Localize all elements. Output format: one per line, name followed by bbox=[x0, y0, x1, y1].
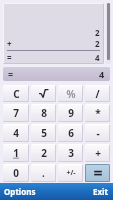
staticText: 1 bbox=[13, 146, 19, 160]
button[interactable]: Percent bbox=[58, 85, 83, 102]
button[interactable]: 2 bbox=[3, 3, 104, 64]
staticText: 5 bbox=[41, 126, 47, 140]
staticText: = bbox=[8, 68, 14, 80]
button[interactable]: Add bbox=[85, 144, 110, 162]
button[interactable]: 1 bbox=[3, 144, 29, 162]
staticText: 2 bbox=[95, 38, 100, 49]
staticText: 2 bbox=[41, 146, 47, 160]
button[interactable]: 5 bbox=[31, 124, 56, 142]
staticText: 4 bbox=[13, 126, 19, 140]
button[interactable]: Equals bbox=[85, 164, 110, 182]
button[interactable]: Divide bbox=[85, 85, 110, 102]
staticText: 7 bbox=[13, 106, 19, 120]
staticText: . bbox=[42, 166, 45, 180]
button[interactable]: Options bbox=[0, 183, 40, 200]
staticText: 9 bbox=[68, 106, 74, 120]
button[interactable]: Multiply bbox=[85, 104, 110, 122]
staticText: - bbox=[96, 126, 100, 140]
staticText: 0 bbox=[13, 166, 19, 180]
button[interactable]: Clear bbox=[3, 85, 29, 102]
staticText: = bbox=[7, 52, 12, 63]
button[interactable]: 8 bbox=[31, 104, 56, 122]
staticText: Options bbox=[4, 186, 36, 197]
staticText: 2 bbox=[95, 27, 100, 38]
button[interactable]: 0 bbox=[3, 164, 29, 182]
button[interactable]: 7 bbox=[3, 104, 29, 122]
button[interactable]: Decimal point bbox=[31, 164, 56, 182]
staticText: 8 bbox=[41, 106, 47, 120]
button[interactable]: 3 bbox=[58, 144, 83, 162]
button[interactable]: 6 bbox=[58, 124, 83, 142]
staticText: / bbox=[95, 87, 100, 101]
staticText: Exit bbox=[93, 186, 108, 197]
staticText: C bbox=[13, 87, 20, 101]
button[interactable]: Square root bbox=[31, 85, 56, 102]
staticText: 4 bbox=[99, 68, 105, 80]
button[interactable]: Exit bbox=[89, 183, 113, 200]
staticText: 3 bbox=[68, 146, 74, 160]
staticText: 6 bbox=[68, 126, 74, 140]
staticText: + bbox=[7, 38, 12, 49]
button[interactable]: 9 bbox=[58, 104, 83, 122]
staticText: * bbox=[95, 106, 101, 120]
button[interactable]: 2 bbox=[31, 144, 56, 162]
staticText: % bbox=[66, 87, 76, 101]
staticText: +/- bbox=[66, 168, 76, 178]
button[interactable]: = bbox=[3, 67, 110, 81]
button[interactable]: Subtract bbox=[85, 124, 110, 142]
staticText: 4 bbox=[95, 52, 100, 63]
button[interactable]: 4 bbox=[3, 124, 29, 142]
button[interactable]: Change sign bbox=[58, 164, 83, 182]
staticText: + bbox=[95, 146, 101, 160]
